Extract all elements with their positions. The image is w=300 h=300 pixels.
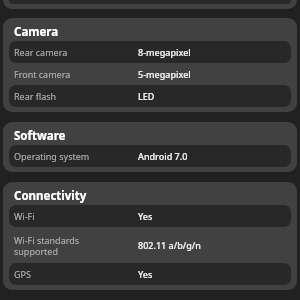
staticText: Wi-Fi bbox=[14, 210, 35, 222]
staticText: Rear flash bbox=[14, 90, 57, 102]
staticText: Wi-Fi standards supported bbox=[14, 234, 80, 257]
staticText: Front camera bbox=[14, 68, 71, 80]
button[interactable]: Front camera bbox=[9, 63, 291, 85]
staticText: Operating system bbox=[14, 150, 90, 162]
button[interactable]: Rear camera bbox=[9, 41, 291, 63]
button[interactable]: Rear flash bbox=[9, 85, 291, 107]
staticText: Software bbox=[14, 128, 66, 144]
staticText: Yes bbox=[138, 268, 153, 280]
staticText: Android 7.0 bbox=[138, 150, 188, 162]
staticText: Connectivity bbox=[14, 188, 87, 204]
staticText: Rear camera bbox=[14, 46, 68, 58]
button[interactable]: Wi-Fi bbox=[9, 205, 291, 227]
staticText: Camera bbox=[14, 24, 59, 40]
staticText: GPS bbox=[14, 268, 31, 280]
staticText: Yes bbox=[138, 210, 153, 222]
button[interactable]: GPS bbox=[9, 263, 291, 285]
staticText: LED bbox=[138, 90, 155, 102]
staticText: 5-megapixel bbox=[138, 68, 191, 80]
button[interactable]: Wi-Fi standards supported bbox=[9, 227, 291, 263]
staticText: 802.11 a/b/g/n bbox=[138, 239, 201, 251]
button[interactable]: Operating system bbox=[9, 145, 291, 167]
staticText: 8-megapixel bbox=[138, 46, 191, 58]
